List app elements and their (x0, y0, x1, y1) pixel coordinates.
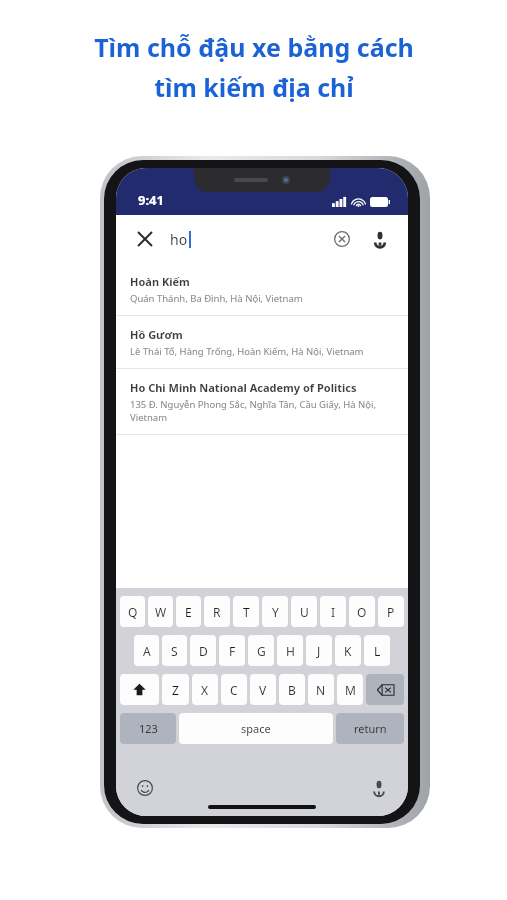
staticText: W (155, 604, 167, 620)
button[interactable]: A (134, 635, 159, 666)
staticText: F (229, 643, 236, 659)
button[interactable]: B (279, 674, 305, 705)
staticText: 135 Đ. Nguyễn Phong Sắc, Nghĩa Tân, Cầu … (130, 398, 377, 411)
button[interactable]: Q (120, 596, 145, 627)
staticText: V (259, 682, 267, 698)
button[interactable]: C (221, 674, 247, 705)
staticText: U (300, 604, 309, 620)
staticText: Vietnam (130, 411, 168, 424)
button[interactable]: F (219, 635, 245, 666)
button[interactable]: W (148, 596, 173, 627)
staticText: A (143, 643, 151, 659)
staticText: P (387, 604, 395, 620)
button[interactable]: O (349, 596, 375, 627)
staticText: B (288, 682, 296, 698)
staticText: tìm kiếm địa chỉ (154, 70, 354, 104)
button[interactable]: space (179, 713, 333, 744)
staticText: Hồ Gươm (130, 327, 183, 342)
button[interactable]: P (378, 596, 404, 627)
button[interactable]: D (190, 635, 216, 666)
button[interactable]: L (364, 635, 390, 666)
staticText: L (374, 643, 381, 659)
staticText: J (317, 643, 321, 659)
staticText: space (241, 721, 271, 736)
staticText: E (185, 604, 192, 620)
button[interactable]: R (204, 596, 230, 627)
button[interactable]: S (162, 635, 187, 666)
button[interactable]: Y (262, 596, 288, 627)
staticText: S (171, 643, 178, 659)
staticText: M (345, 682, 356, 698)
button[interactable]: K (335, 635, 361, 666)
staticText: ho (170, 230, 188, 249)
button[interactable]: E (176, 596, 201, 627)
button[interactable]: Shift (120, 674, 159, 705)
staticText: C (230, 682, 238, 698)
staticText: N (316, 682, 326, 698)
button[interactable]: Clear text (326, 223, 358, 255)
button[interactable]: Hồ Gươm (116, 316, 408, 369)
staticText: Lê Thái Tổ, Hàng Trống, Hoàn Kiếm, Hà Nộ… (130, 345, 364, 358)
button[interactable]: Dictation (366, 775, 392, 801)
button[interactable]: T (233, 596, 259, 627)
button[interactable]: Hoàn Kiếm (116, 263, 408, 316)
staticText: Z (172, 682, 179, 698)
staticText: O (357, 604, 367, 620)
staticText: X (201, 682, 209, 698)
button[interactable]: J (306, 635, 332, 666)
button[interactable]: Ho Chi Minh National Academy of Politics (116, 369, 408, 435)
staticText: Q (128, 604, 138, 620)
button[interactable]: Voice search (364, 223, 396, 255)
button[interactable]: I (320, 596, 346, 627)
staticText: Hoàn Kiếm (130, 274, 190, 289)
staticText: D (199, 643, 208, 659)
button[interactable]: V (250, 674, 276, 705)
button[interactable]: Close search (128, 222, 162, 256)
staticText: return (354, 721, 387, 736)
staticText: 9:41 (138, 191, 164, 209)
button[interactable]: N (308, 674, 334, 705)
button[interactable]: U (291, 596, 317, 627)
button[interactable]: Z (162, 674, 189, 705)
staticText: G (257, 643, 266, 659)
button[interactable]: Emoji (132, 775, 158, 801)
button[interactable]: return (336, 713, 404, 744)
staticText: 123 (139, 721, 158, 736)
staticText: H (286, 643, 295, 659)
staticText: K (344, 643, 352, 659)
button[interactable]: X (192, 674, 218, 705)
button[interactable]: G (248, 635, 274, 666)
button[interactable]: 123 (120, 713, 176, 744)
button[interactable]: H (277, 635, 303, 666)
staticText: R (213, 604, 221, 620)
staticText: Tìm chỗ đậu xe bằng cách (94, 30, 414, 64)
staticText: Quán Thánh, Ba Đình, Hà Nội, Vietnam (130, 292, 303, 305)
staticText: Ho Chi Minh National Academy of Politics (130, 380, 357, 395)
staticText: I (331, 604, 336, 620)
staticText: T (243, 604, 250, 620)
staticText: Y (272, 604, 279, 620)
button[interactable]: M (337, 674, 363, 705)
button[interactable]: Backspace (366, 674, 404, 705)
